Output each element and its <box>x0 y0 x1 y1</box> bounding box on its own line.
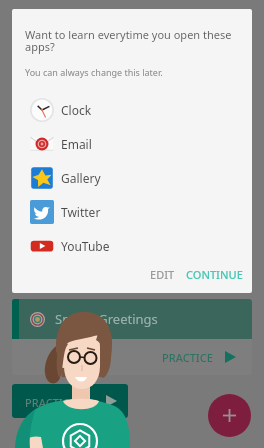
button[interactable]: EDIT <box>138 258 187 290</box>
staticText: Spring Greetings <box>55 310 158 328</box>
staticText: Twitter <box>61 204 101 220</box>
staticText: Clock <box>61 102 92 118</box>
staticText: Gallery <box>61 170 101 186</box>
button[interactable]: YouTube <box>12 233 252 259</box>
staticText: EDIT <box>150 267 175 282</box>
staticText: Email <box>61 136 92 152</box>
button[interactable]: PRACTICE <box>12 384 128 418</box>
staticText: Want to learn everytime you open these a… <box>25 27 239 54</box>
button[interactable]: Clock <box>12 97 252 123</box>
button[interactable]: Twitter <box>12 199 252 225</box>
button[interactable]: Spring Greetings <box>12 299 252 375</box>
staticText: You can always change this later. <box>25 66 163 78</box>
staticText: YouTube <box>61 238 110 254</box>
staticText: PRACTICE <box>162 350 213 365</box>
button[interactable]: Email <box>12 131 252 157</box>
staticText: CONTINUE <box>186 267 243 282</box>
staticText: PRACTICE <box>25 395 76 410</box>
button[interactable]: Add <box>208 394 251 437</box>
button[interactable]: CONTINUE <box>174 258 252 290</box>
button[interactable]: Gallery <box>12 165 252 191</box>
